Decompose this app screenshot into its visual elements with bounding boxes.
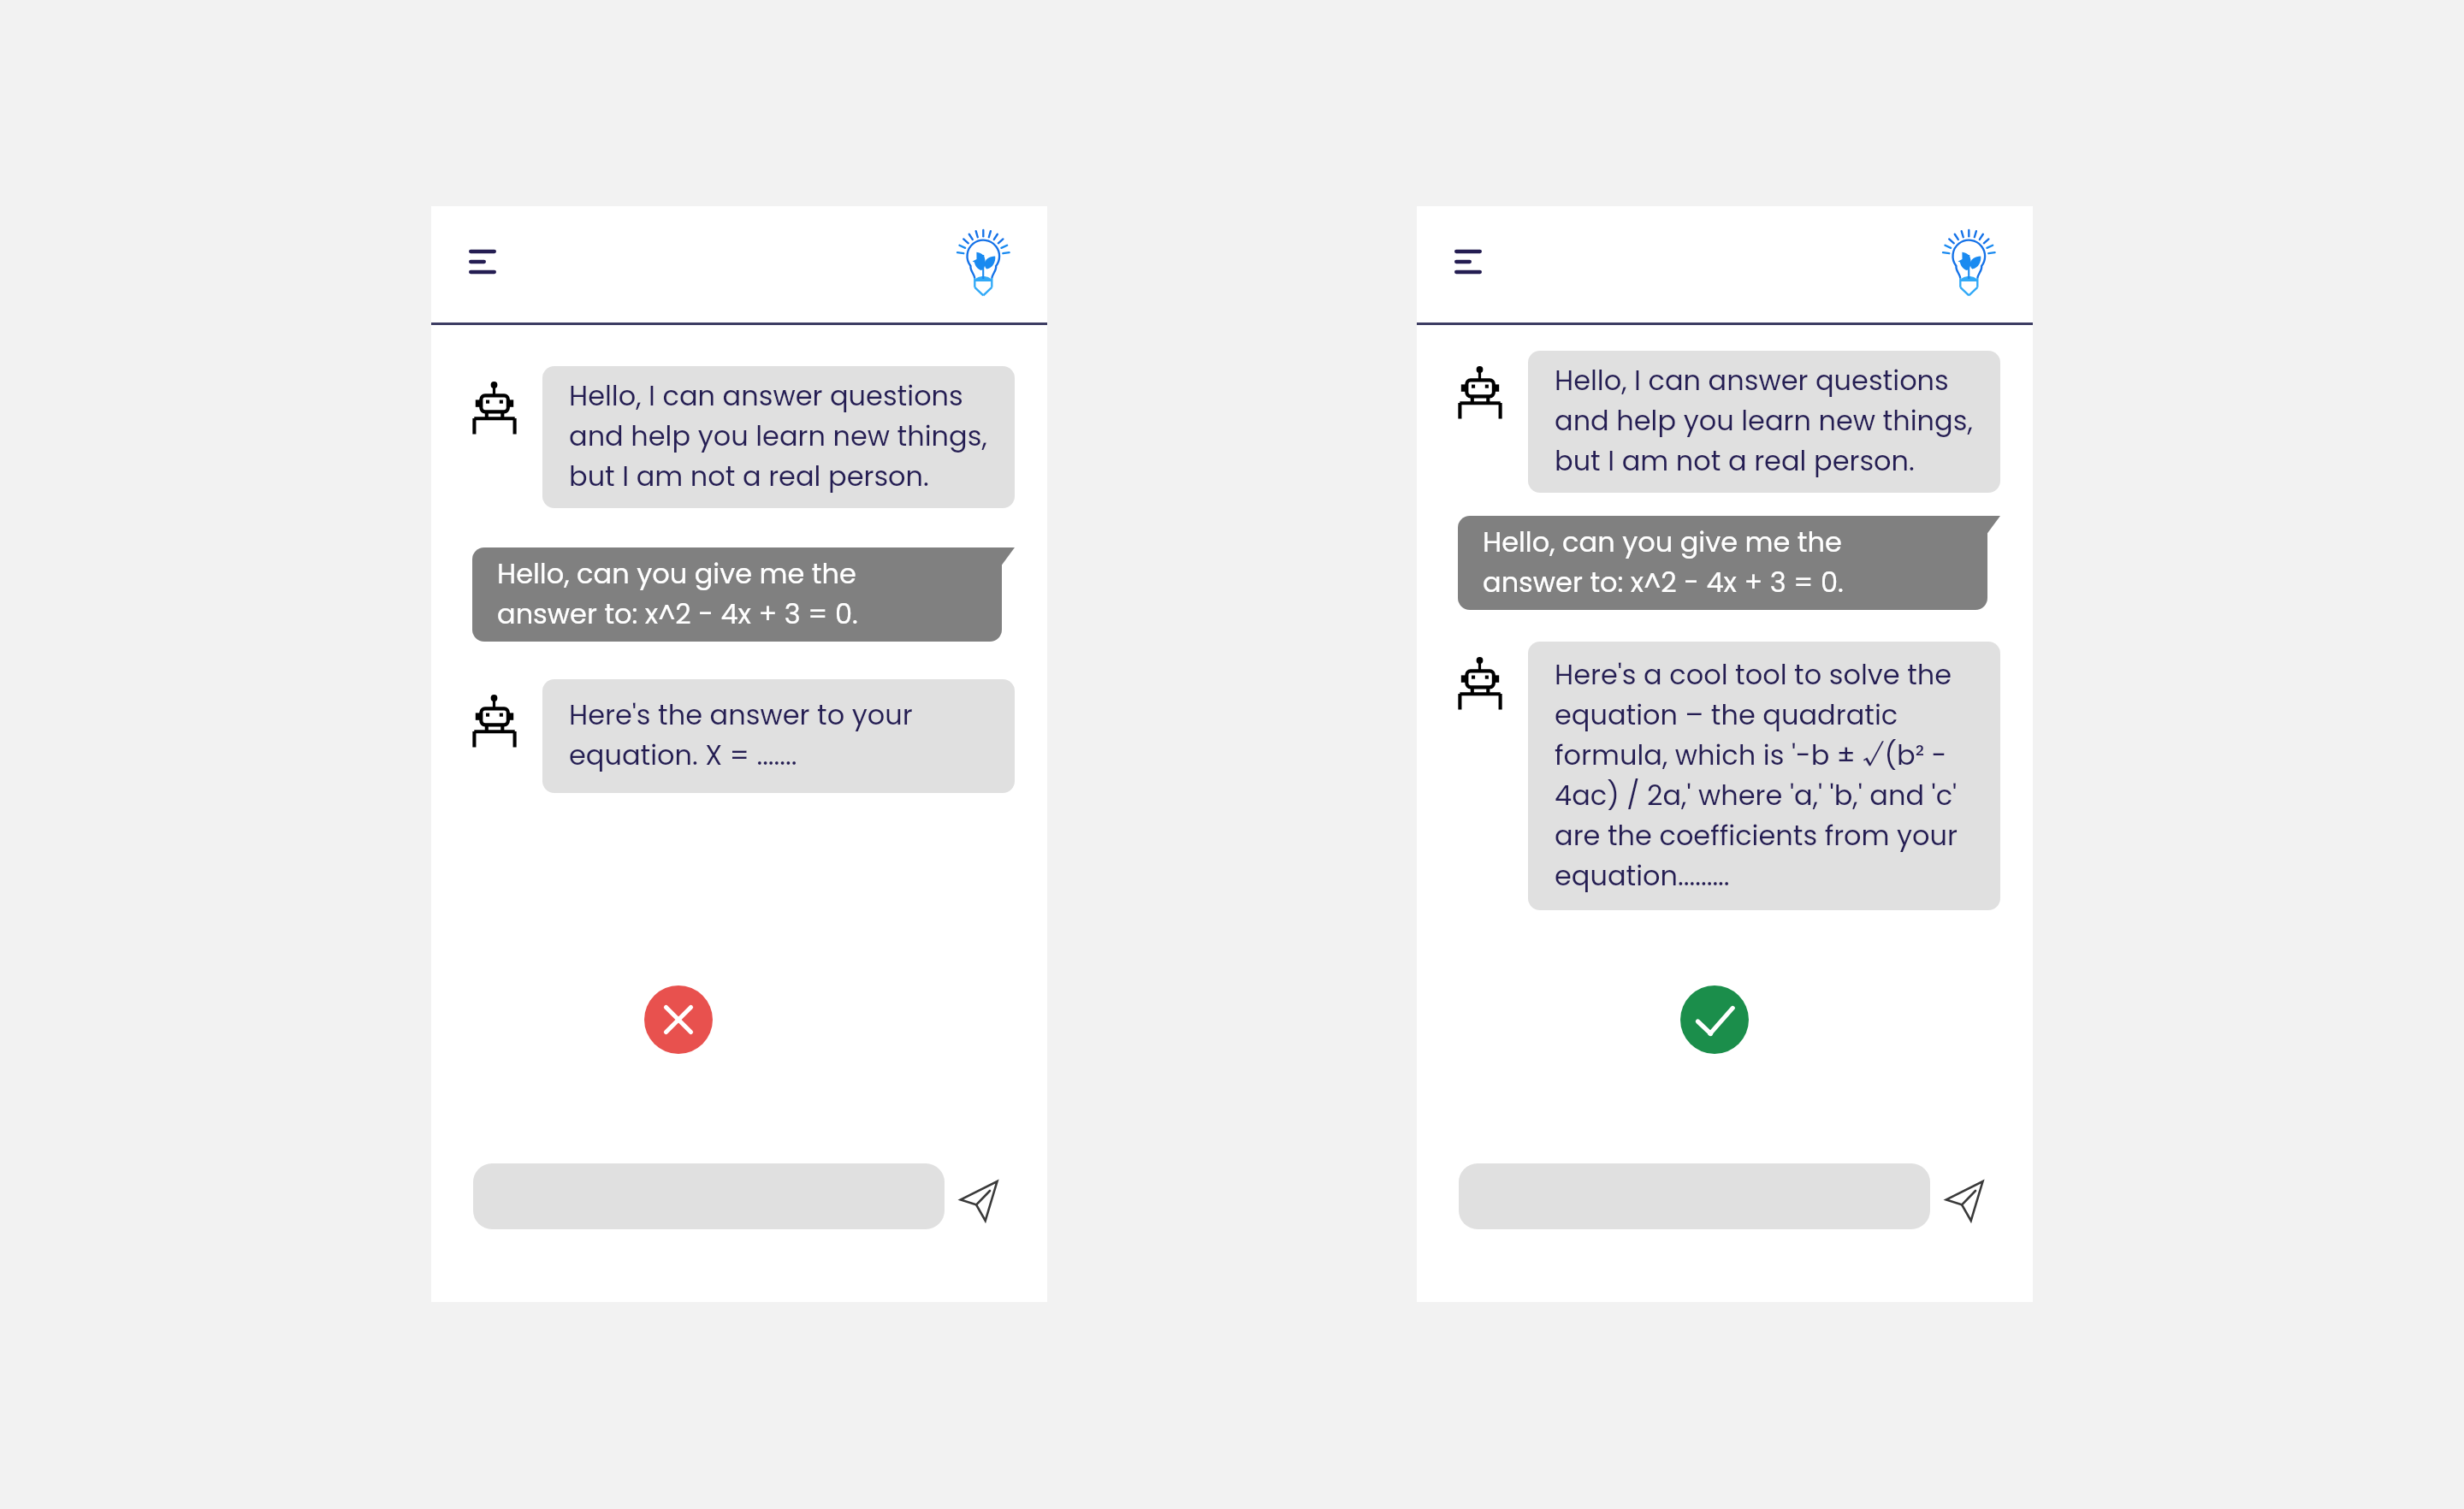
staticText: answer to: x^2 - 4x + 3 = 0. — [1483, 563, 1844, 603]
staticText: but I am not a real person. — [1555, 441, 1915, 482]
button[interactable]: Hello, can you give me the — [1458, 516, 2000, 610]
button[interactable]: Menu — [1434, 231, 1502, 293]
staticText: Hello, can you give me the — [497, 554, 856, 595]
button[interactable]: Here's a cool tool to solve the — [1528, 642, 2000, 910]
staticText: 4ac) / 2a,' where 'a,' 'b,' and 'c' — [1555, 776, 1958, 816]
button[interactable]: Idea logo — [1934, 224, 2003, 301]
staticText: and help you learn new things, — [569, 417, 987, 457]
button[interactable]: Confirm — [1680, 985, 1749, 1054]
staticText: formula, which is '-b ± √(b² - — [1555, 736, 1947, 776]
button[interactable]: Idea logo — [949, 224, 1017, 301]
staticText: Hello, I can answer questions — [1555, 361, 1949, 401]
button[interactable]: Send — [1944, 1179, 1988, 1223]
button[interactable]: Message field — [473, 1163, 945, 1229]
staticText: equation......... — [1555, 856, 1730, 897]
button[interactable]: Hello, I can answer questions — [1528, 351, 2000, 493]
staticText: are the coefficients from your — [1555, 816, 1958, 856]
staticText: and help you learn new things, — [1555, 401, 1973, 441]
staticText: equation. X = ....... — [569, 736, 797, 776]
button[interactable]: Message field — [1459, 1163, 1930, 1229]
staticText: Here's the answer to your — [569, 695, 913, 736]
staticText: Hello, can you give me the — [1483, 523, 1842, 563]
staticText: but I am not a real person. — [569, 457, 929, 497]
button[interactable]: Send — [958, 1179, 1003, 1223]
staticText: Here's a cool tool to solve the — [1555, 655, 1952, 695]
button[interactable]: Dismiss — [644, 985, 713, 1054]
button[interactable]: Hello, I can answer questions — [542, 366, 1015, 508]
staticText: equation – the quadratic — [1555, 695, 1898, 736]
button[interactable]: Menu — [448, 231, 517, 293]
button[interactable]: Hello, can you give me the — [472, 547, 1015, 642]
button[interactable]: Here's the answer to your — [542, 679, 1015, 793]
staticText: Hello, I can answer questions — [569, 376, 963, 417]
staticText: answer to: x^2 - 4x + 3 = 0. — [497, 595, 858, 635]
